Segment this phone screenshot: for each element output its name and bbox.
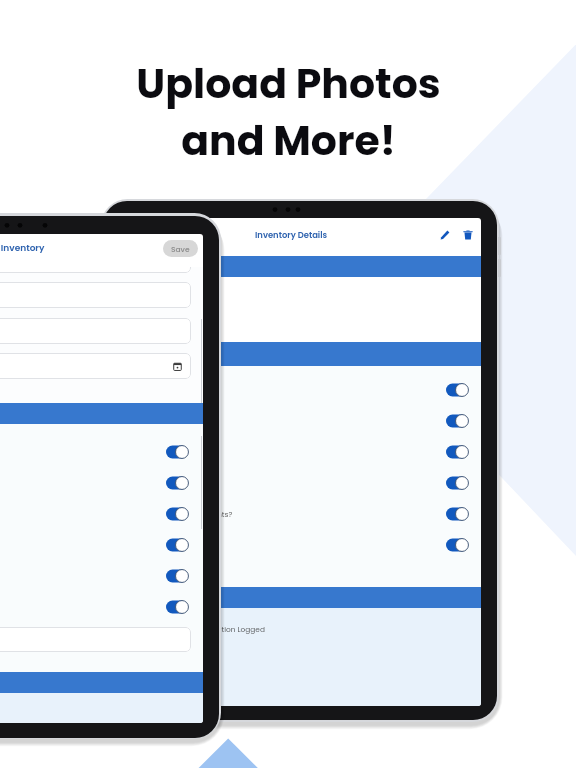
button[interactable] (0, 467, 189, 498)
staticText: Packaging intact (125, 447, 189, 457)
button[interactable]: Follow-up required. (125, 529, 469, 560)
button[interactable] (0, 529, 189, 560)
staticText: and More! (181, 112, 396, 169)
staticText: Save (171, 244, 190, 254)
staticText: Follow-up required. (125, 540, 198, 550)
button[interactable]: Packaging intact (125, 436, 469, 467)
button[interactable]: Photos attached (125, 467, 469, 498)
staticText: Serial recorded (125, 416, 182, 426)
button[interactable]: Delete (458, 225, 478, 245)
button[interactable]: Edit (435, 225, 455, 245)
button[interactable]: Pick date (172, 361, 183, 372)
staticText: Upload Photos (136, 55, 441, 112)
staticText: Inspection Logged (197, 624, 265, 634)
button[interactable]: Visible damage to contents? (125, 498, 469, 529)
staticText: Add Inventory (0, 242, 45, 255)
button[interactable] (0, 560, 189, 591)
button[interactable]: Item verified (125, 374, 469, 405)
staticText: Visible damage to contents? (125, 509, 233, 519)
button[interactable] (0, 498, 189, 529)
button[interactable]: Save (163, 240, 198, 257)
staticText: Inventory Details (255, 229, 328, 241)
staticText: Photos attached (125, 478, 188, 488)
button[interactable]: Serial recorded (125, 405, 469, 436)
button[interactable] (0, 436, 189, 467)
button[interactable] (0, 591, 189, 622)
